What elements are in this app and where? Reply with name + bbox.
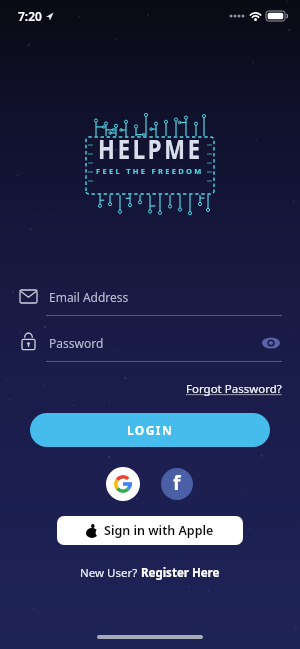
- button[interactable]: LOGIN: [30, 413, 270, 447]
- button[interactable]: Password: [18, 332, 282, 362]
- staticText: Email Address: [49, 289, 129, 305]
- button[interactable]: Forgot Password?: [186, 381, 282, 397]
- staticText: FEEL THE FREEDOM: [96, 166, 204, 176]
- staticText: HELPME: [98, 130, 203, 166]
- staticText: Sign in with Apple: [104, 522, 214, 539]
- staticText: f: [173, 470, 181, 496]
- staticText: New User?: [80, 565, 141, 581]
- staticText: 7:20: [18, 8, 42, 24]
- button[interactable]: [106, 467, 140, 501]
- button[interactable]: f: [161, 468, 193, 500]
- button[interactable]: Sign in with Apple: [57, 516, 243, 545]
- button[interactable]: [262, 337, 280, 349]
- button[interactable]: Email Address: [18, 286, 282, 316]
- staticText: LOGIN: [127, 422, 174, 438]
- button[interactable]: New User?: [80, 565, 220, 581]
- staticText: Register Here: [141, 565, 220, 581]
- staticText: Password: [49, 335, 104, 351]
